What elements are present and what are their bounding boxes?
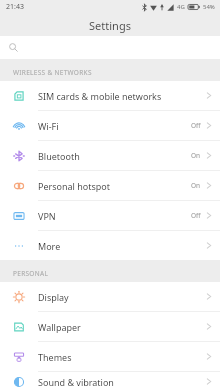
button[interactable]: Bluetooth <box>0 140 220 170</box>
staticText: More <box>38 240 61 252</box>
staticText: Personal hotspot <box>38 180 111 192</box>
staticText: Wi-Fi <box>38 120 59 132</box>
button[interactable]: Themes <box>0 341 220 371</box>
button[interactable]: Search <box>0 36 220 59</box>
button[interactable]: More <box>0 230 220 260</box>
other: Search <box>9 43 18 52</box>
staticText: Off <box>191 121 201 130</box>
button[interactable]: Sound & vibration <box>0 371 220 391</box>
button[interactable]: Display <box>0 282 220 311</box>
staticText: 54% <box>203 3 215 11</box>
staticText: WIRELESS & NETWORKS <box>13 68 92 77</box>
staticText: Bluetooth <box>38 150 80 162</box>
staticText: 4G <box>177 3 185 11</box>
staticText: Themes <box>38 351 72 363</box>
staticText: On <box>191 151 201 160</box>
staticText: PERSONAL <box>13 269 49 278</box>
button[interactable]: VPN <box>0 200 220 230</box>
staticText: VPN <box>38 210 56 222</box>
staticText: SIM cards & mobile networks <box>38 90 162 102</box>
staticText: Off <box>191 211 201 220</box>
staticText: 21:43 <box>6 2 24 12</box>
button[interactable]: Personal hotspot <box>0 170 220 200</box>
staticText: Display <box>38 291 69 303</box>
staticText: On <box>191 181 201 190</box>
button[interactable]: SIM cards & mobile networks <box>0 81 220 110</box>
button[interactable]: Wallpaper <box>0 311 220 341</box>
staticText: Wallpaper <box>38 321 81 333</box>
staticText: Settings <box>89 18 131 33</box>
button[interactable]: Wi-Fi <box>0 110 220 140</box>
staticText: Sound & vibration <box>38 376 114 388</box>
